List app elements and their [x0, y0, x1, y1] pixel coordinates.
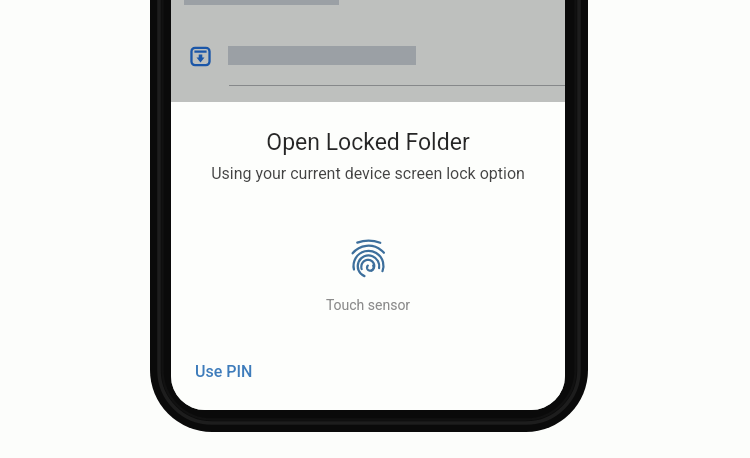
staticText: Using your current device screen lock op… — [171, 164, 565, 186]
staticText: Touch sensor — [171, 297, 565, 317]
button[interactable]: Use PIN — [182, 353, 266, 390]
staticText: Use PIN — [195, 362, 253, 381]
button[interactable]: Fingerprint sensor — [352, 239, 385, 278]
staticText: Open Locked Folder — [171, 129, 565, 161]
